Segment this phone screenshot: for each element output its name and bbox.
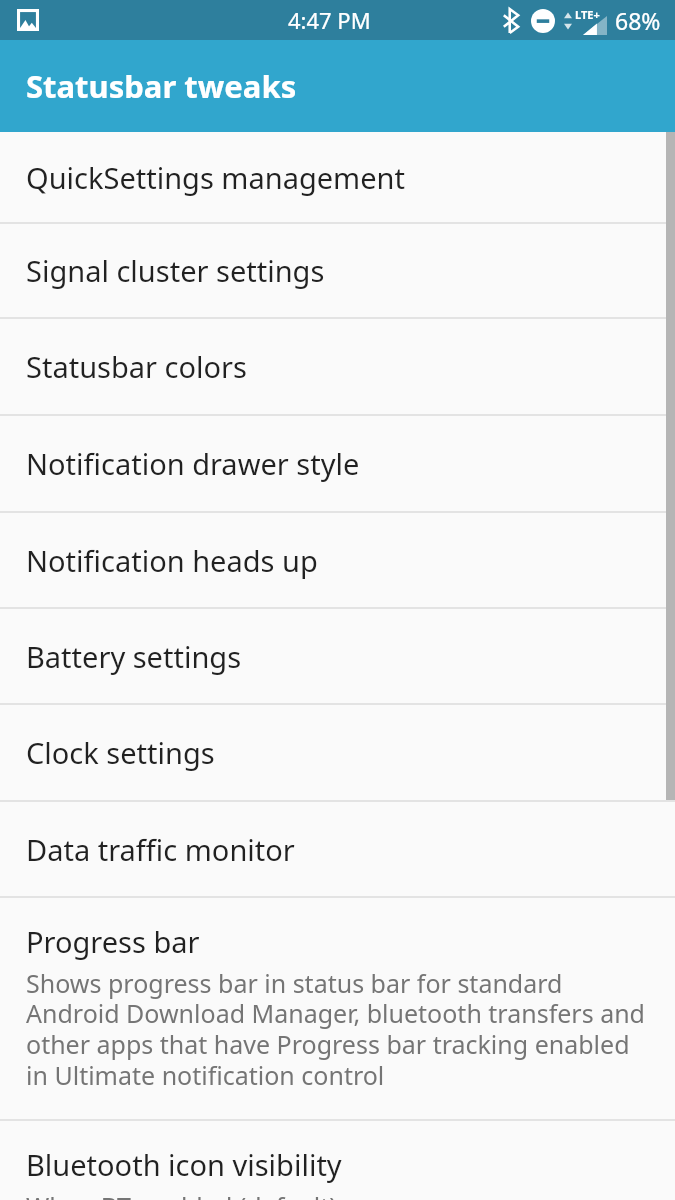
button[interactable]: Notification drawer style — [0, 416, 675, 511]
button[interactable]: Clock settings — [0, 705, 675, 800]
button[interactable]: Signal cluster settings — [0, 224, 675, 317]
staticText: Signal cluster settings — [26, 251, 325, 290]
staticText: When BT enabled (default) — [26, 1189, 337, 1200]
button[interactable]: Bluetooth icon visibility — [0, 1121, 675, 1200]
button[interactable]: QuickSettings management — [0, 132, 675, 222]
staticText: Statusbar tweaks — [26, 65, 297, 107]
staticText: QuickSettings management — [26, 158, 405, 197]
staticText: Shows progress bar in status bar for sta… — [26, 966, 655, 1093]
staticText: LTE+ — [575, 7, 600, 22]
staticText: 4:47 PM — [288, 5, 371, 35]
staticText: Battery settings — [26, 637, 242, 676]
staticText: Statusbar colors — [26, 347, 247, 386]
staticText: Notification heads up — [26, 541, 318, 580]
staticText: Data traffic monitor — [26, 830, 295, 869]
button[interactable]: Notification heads up — [0, 513, 675, 607]
staticText: Bluetooth icon visibility — [26, 1145, 342, 1184]
other: Screenshot — [17, 9, 39, 31]
staticText: 68% — [615, 5, 661, 36]
staticText: Clock settings — [26, 733, 215, 772]
button[interactable]: Statusbar colors — [0, 319, 675, 414]
button[interactable]: Progress bar — [0, 898, 675, 1119]
button[interactable]: Data traffic monitor — [0, 802, 675, 896]
staticText: Progress bar — [26, 922, 200, 961]
button[interactable]: Battery settings — [0, 609, 675, 703]
staticText: Notification drawer style — [26, 444, 360, 483]
